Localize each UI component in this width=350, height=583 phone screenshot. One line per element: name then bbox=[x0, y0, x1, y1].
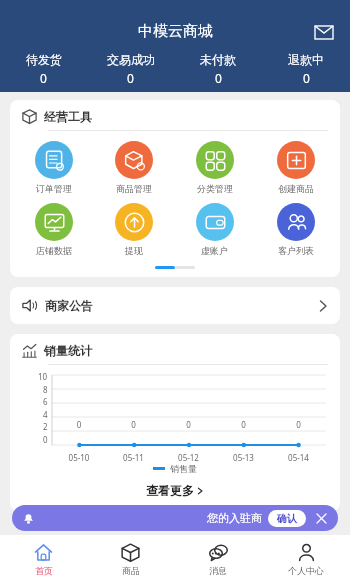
staticText: 2 bbox=[43, 421, 48, 432]
staticText: 05-14 bbox=[271, 452, 326, 463]
button[interactable]: 店铺数据 bbox=[14, 201, 94, 258]
staticText: 0 bbox=[106, 419, 161, 430]
button[interactable]: 消息 bbox=[310, 18, 338, 46]
staticText: 未付款 bbox=[200, 52, 236, 67]
staticText: 消息 bbox=[209, 565, 227, 576]
staticText: 经营工具 bbox=[44, 109, 92, 124]
button[interactable]: 商品管理 bbox=[94, 139, 174, 196]
staticText: 0 bbox=[216, 419, 271, 430]
staticText: 0 bbox=[303, 70, 310, 86]
staticText: 0 bbox=[127, 70, 134, 86]
staticText: 提现 bbox=[125, 245, 143, 256]
staticText: 0 bbox=[43, 434, 48, 445]
staticText: 创建商品 bbox=[278, 183, 314, 194]
button[interactable]: 虚账户 bbox=[174, 201, 255, 258]
button[interactable]: 待发货 bbox=[0, 52, 87, 86]
button[interactable]: 商家公告 bbox=[10, 287, 340, 324]
other: 通知 bbox=[22, 512, 35, 525]
staticText: 个人中心 bbox=[288, 565, 324, 576]
staticText: 05-13 bbox=[216, 452, 271, 463]
staticText: 确认 bbox=[277, 512, 297, 525]
button[interactable]: 交易成功 bbox=[87, 52, 174, 86]
staticText: 首页 bbox=[35, 565, 53, 576]
staticText: 销售量 bbox=[170, 463, 197, 474]
staticText: 0 bbox=[161, 419, 216, 430]
staticText: 0 bbox=[40, 70, 47, 86]
button[interactable]: 订单管理 bbox=[14, 139, 94, 196]
staticText: 商品 bbox=[122, 565, 140, 576]
staticText: 退款中 bbox=[288, 52, 324, 67]
staticText: 虚账户 bbox=[201, 245, 228, 256]
button[interactable]: 创建商品 bbox=[255, 139, 336, 196]
button[interactable]: 首页 bbox=[0, 535, 87, 583]
staticText: 05-10 bbox=[52, 452, 106, 463]
staticText: 商家公告 bbox=[45, 298, 93, 313]
button[interactable]: 消息 bbox=[174, 535, 262, 583]
staticText: 0 bbox=[271, 419, 326, 430]
button[interactable]: 商品 bbox=[87, 535, 174, 583]
button[interactable]: 分类管理 bbox=[174, 139, 255, 196]
button[interactable]: 查看更多 bbox=[10, 480, 340, 501]
staticText: 商品管理 bbox=[116, 183, 152, 194]
button[interactable]: 关闭 bbox=[314, 511, 328, 525]
staticText: 分类管理 bbox=[197, 183, 233, 194]
staticText: 待发货 bbox=[26, 52, 62, 67]
staticText: 05-12 bbox=[161, 452, 216, 463]
staticText: 客户列表 bbox=[278, 245, 314, 256]
staticText: 查看更多 bbox=[146, 483, 194, 498]
button[interactable]: 确认 bbox=[268, 510, 306, 527]
staticText: 中模云商城 bbox=[138, 22, 213, 41]
staticText: 订单管理 bbox=[36, 183, 72, 194]
staticText: 6 bbox=[43, 396, 48, 407]
staticText: 10 bbox=[38, 371, 48, 382]
staticText: 0 bbox=[215, 70, 222, 86]
staticText: 您的入驻商 bbox=[207, 511, 262, 525]
staticText: 0 bbox=[52, 419, 106, 430]
staticText: 05-11 bbox=[106, 452, 161, 463]
staticText: 8 bbox=[43, 384, 48, 395]
button[interactable]: 提现 bbox=[94, 201, 174, 258]
staticText: 销量统计 bbox=[44, 343, 92, 358]
button[interactable]: 退款中 bbox=[262, 52, 350, 86]
button[interactable]: 个人中心 bbox=[262, 535, 350, 583]
staticText: 交易成功 bbox=[107, 52, 155, 67]
staticText: 店铺数据 bbox=[36, 245, 72, 256]
staticText: 4 bbox=[43, 409, 48, 420]
button[interactable]: 未付款 bbox=[174, 52, 262, 86]
button[interactable]: 客户列表 bbox=[255, 201, 336, 258]
